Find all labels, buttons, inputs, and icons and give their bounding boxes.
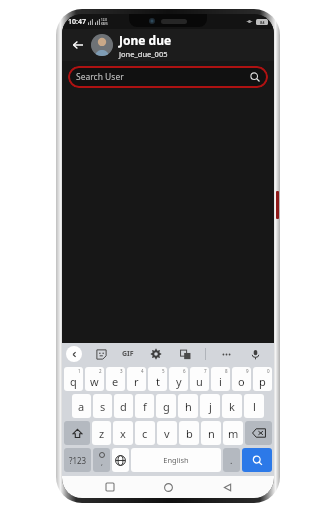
staticText: 8 [225, 368, 228, 374]
staticText: y [176, 374, 182, 389]
button[interactable]: 1 [64, 367, 83, 391]
staticText: g [163, 399, 170, 414]
staticText: 1 [78, 368, 81, 374]
button[interactable]: 0 [253, 367, 272, 391]
staticText: v [164, 426, 170, 441]
staticText: 4 [141, 368, 144, 374]
staticText: Search User [76, 71, 250, 83]
button[interactable]: j [200, 394, 220, 418]
button[interactable]: n [201, 421, 221, 445]
button[interactable]: b [179, 421, 199, 445]
button[interactable]: More options [217, 345, 235, 363]
staticText: 2 [99, 368, 102, 374]
staticText: w [90, 374, 99, 389]
staticText: i [219, 374, 222, 389]
button[interactable]: Search [242, 448, 272, 472]
button[interactable]: s [93, 394, 112, 418]
button[interactable]: 6 [169, 367, 188, 391]
button[interactable]: 4 [127, 367, 146, 391]
staticText: u [196, 374, 203, 389]
button[interactable]: Backspace [245, 421, 272, 445]
staticText: m [228, 426, 239, 441]
button[interactable]: 7 [190, 367, 209, 391]
button[interactable]: Translate [176, 345, 194, 363]
staticText: b [186, 426, 193, 441]
staticText: a [78, 399, 85, 414]
button[interactable]: h [178, 394, 198, 418]
button[interactable]: ?123 [64, 448, 91, 472]
button[interactable]: m [223, 421, 243, 445]
button[interactable]: . [223, 448, 240, 472]
button[interactable]: x [113, 421, 133, 445]
staticText: s [100, 399, 106, 414]
staticText: 3 [120, 368, 123, 374]
staticText: h [185, 399, 192, 414]
staticText: c [142, 426, 148, 441]
button[interactable]: g [156, 394, 176, 418]
staticText: k [229, 399, 235, 414]
staticText: 12.0 KB/S [101, 18, 108, 26]
staticText: j [209, 399, 212, 414]
button[interactable]: English [131, 448, 221, 472]
button[interactable]: d [114, 394, 133, 418]
staticText: GIF [122, 349, 134, 359]
button[interactable]: 9 [232, 367, 251, 391]
staticText: Jone due [119, 32, 172, 48]
button[interactable]: Back [68, 35, 88, 55]
staticText: 7 [204, 368, 207, 374]
button[interactable]: Home [157, 476, 179, 498]
staticText: 84 [260, 20, 265, 25]
button[interactable]: a [72, 394, 91, 418]
staticText: n [208, 426, 215, 441]
staticText: p [259, 374, 266, 389]
button[interactable]: 3 [106, 367, 125, 391]
button[interactable]: Settings [147, 345, 165, 363]
staticText: 10:47 [68, 17, 86, 27]
staticText: ?123 [69, 455, 87, 466]
button[interactable]: Recents [99, 476, 121, 498]
staticText: q [70, 374, 77, 389]
staticText: 9 [246, 368, 249, 374]
staticText: , [101, 458, 103, 468]
button[interactable]: f [135, 394, 154, 418]
staticText: d [120, 399, 127, 414]
button[interactable]: l [244, 394, 264, 418]
button[interactable]: Change language [112, 448, 129, 472]
staticText: x [120, 426, 126, 441]
button[interactable]: Collapse toolbar [66, 346, 82, 362]
staticText: f [143, 399, 147, 414]
staticText: t [156, 374, 160, 389]
staticText: Jone_due_005 [119, 49, 168, 59]
staticText: l [253, 399, 256, 414]
button[interactable]: Shift [64, 421, 90, 445]
staticText: 5 [162, 368, 165, 374]
button[interactable]: Back [216, 476, 238, 498]
staticText: o [238, 374, 245, 389]
button[interactable]: 8 [211, 367, 230, 391]
staticText: z [99, 426, 105, 441]
button[interactable]: z [92, 421, 111, 445]
button[interactable]: Profile photo [91, 34, 113, 56]
button[interactable]: Search User [68, 66, 268, 88]
button[interactable]: k [222, 394, 242, 418]
button[interactable]: GIF [120, 347, 136, 361]
staticText: 0 [267, 368, 270, 374]
staticText: e [112, 374, 119, 389]
button[interactable]: Stickers [92, 345, 110, 363]
button[interactable]: 5 [148, 367, 167, 391]
button[interactable]: Emoji and comma [93, 448, 110, 472]
staticText: English [163, 455, 189, 465]
staticText: 6 [183, 368, 186, 374]
staticText: . [230, 454, 233, 466]
button[interactable]: c [135, 421, 155, 445]
staticText: r [134, 374, 139, 389]
button[interactable]: v [157, 421, 177, 445]
button[interactable]: 2 [85, 367, 104, 391]
button[interactable]: Voice input [246, 345, 264, 363]
